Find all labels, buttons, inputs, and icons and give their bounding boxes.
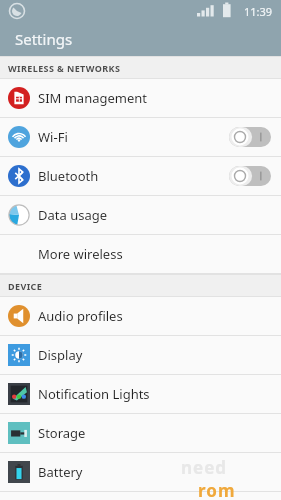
button[interactable]: Storage — [0, 414, 281, 453]
staticText: Wi-Fi — [38, 128, 68, 146]
staticText: Audio profiles — [38, 307, 123, 325]
staticText: Battery — [38, 463, 83, 481]
staticText: Data usage — [38, 206, 108, 224]
staticText: 11:39 — [244, 4, 273, 19]
staticText: need — [181, 456, 228, 479]
button[interactable]: Audio profiles — [0, 297, 281, 336]
staticText: Bluetooth — [38, 167, 99, 185]
staticText: Settings — [15, 29, 73, 49]
staticText: Display — [38, 346, 83, 364]
staticText: rom — [198, 479, 236, 500]
button[interactable]: SIM management — [0, 79, 281, 118]
staticText: WIRELESS & NETWORKS — [8, 62, 121, 74]
staticText: DEVICE — [8, 280, 43, 292]
button[interactable]: Data usage — [0, 196, 281, 235]
staticText: More wireless — [38, 245, 123, 263]
staticText: Storage — [38, 424, 86, 442]
button[interactable]: Notification Lights — [0, 375, 281, 414]
button[interactable]: More wireless — [0, 235, 281, 274]
button[interactable]: Battery — [0, 453, 281, 492]
staticText: SIM management — [38, 89, 148, 107]
button[interactable]: Wi-Fi — [0, 118, 281, 157]
button[interactable]: Display — [0, 336, 281, 375]
staticText: Notification Lights — [38, 385, 150, 403]
button[interactable]: Bluetooth — [0, 157, 281, 196]
